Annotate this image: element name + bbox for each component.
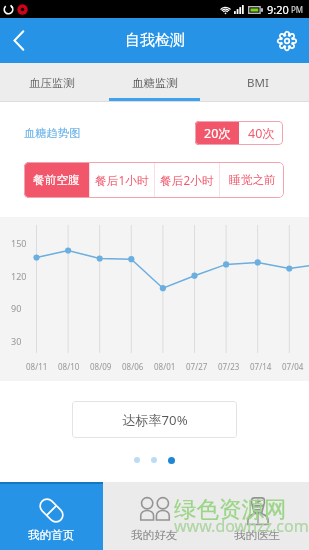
staticText: BMI <box>247 75 269 91</box>
staticText: www.downzz.com <box>174 515 309 537</box>
staticText: 08/09 <box>90 361 112 372</box>
staticText: 08/06 <box>122 361 144 372</box>
staticText: 餐后1小时 <box>95 172 149 188</box>
button[interactable]: 血压监测 <box>0 63 103 102</box>
staticText: 我的首页 <box>28 528 75 543</box>
staticText: 07/14 <box>250 361 272 372</box>
staticText: 9:20 <box>267 2 289 17</box>
staticText: 08/10 <box>58 361 80 372</box>
staticText: 120 <box>11 270 27 282</box>
staticText: 血压监测 <box>29 76 75 90</box>
staticText: 绿色资源网 <box>174 495 287 523</box>
staticText: 我的好友 <box>131 528 178 543</box>
button[interactable]: 餐前空腹 <box>24 162 89 198</box>
button[interactable]: 40次 <box>239 121 283 145</box>
button[interactable]: 20次 <box>195 121 239 145</box>
button[interactable]: 血糖监测 <box>103 63 206 102</box>
staticText: PM <box>291 4 304 15</box>
staticText: 睡觉之前 <box>229 173 276 188</box>
button[interactable]: 达标率70% <box>72 401 237 438</box>
staticText: 自我检测 <box>125 31 185 50</box>
staticText: 20次 <box>204 125 231 142</box>
staticText: 达标率70% <box>122 411 188 429</box>
staticText: 07/04 <box>282 361 304 372</box>
button[interactable]: BMI <box>206 63 309 102</box>
button[interactable]: 我的首页 <box>0 482 103 550</box>
button[interactable]: 我的好友 <box>103 482 206 550</box>
staticText: 30 <box>11 335 22 347</box>
staticText: 90 <box>11 302 22 314</box>
button[interactable]: 餐后1小时 <box>90 162 154 198</box>
button[interactable]: 我的医生 <box>206 482 309 550</box>
staticText: 08/01 <box>154 361 176 372</box>
staticText: 我的医生 <box>234 528 281 543</box>
staticText: 餐前空腹 <box>33 173 80 188</box>
button[interactable]: 睡觉之前 <box>220 162 284 198</box>
button[interactable]: 餐后2小时 <box>155 162 219 198</box>
staticText: 08/11 <box>26 361 48 372</box>
staticText: 血糖趋势图 <box>24 126 81 140</box>
staticText: 餐后2小时 <box>160 172 214 188</box>
staticText: 血糖监测 <box>132 76 178 90</box>
staticText: 07/23 <box>218 361 240 372</box>
button[interactable]: Settings <box>265 18 309 63</box>
staticText: 07/27 <box>186 361 208 372</box>
staticText: 40次 <box>248 125 275 142</box>
staticText: 150 <box>11 237 27 249</box>
button[interactable]: Back <box>0 18 37 63</box>
